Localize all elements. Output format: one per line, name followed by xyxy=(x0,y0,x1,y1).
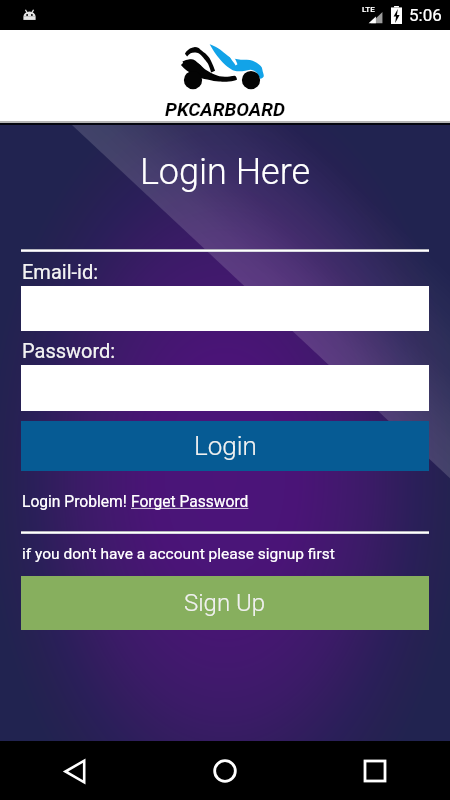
staticText: PKCARBOARD xyxy=(165,98,286,120)
staticText: Login Here xyxy=(0,151,450,193)
button[interactable]: Back xyxy=(49,745,101,797)
button[interactable]: Login xyxy=(21,421,429,471)
staticText: Login Problem! xyxy=(22,493,131,511)
staticText: LTE xyxy=(362,5,375,14)
button[interactable]: Home xyxy=(199,745,251,797)
staticText: Forget Password xyxy=(131,493,249,511)
staticText: Sign Up xyxy=(184,589,266,617)
staticText: 5:06 xyxy=(409,5,442,25)
staticText: Login xyxy=(194,431,257,461)
staticText: Password: xyxy=(22,339,116,362)
staticText: Email-id: xyxy=(22,260,99,283)
button[interactable]: Recent apps xyxy=(349,745,401,797)
button[interactable]: Sign Up xyxy=(21,576,429,630)
button[interactable]: Login Problem! xyxy=(22,493,249,511)
staticText: if you don't have a account please signu… xyxy=(22,545,335,563)
